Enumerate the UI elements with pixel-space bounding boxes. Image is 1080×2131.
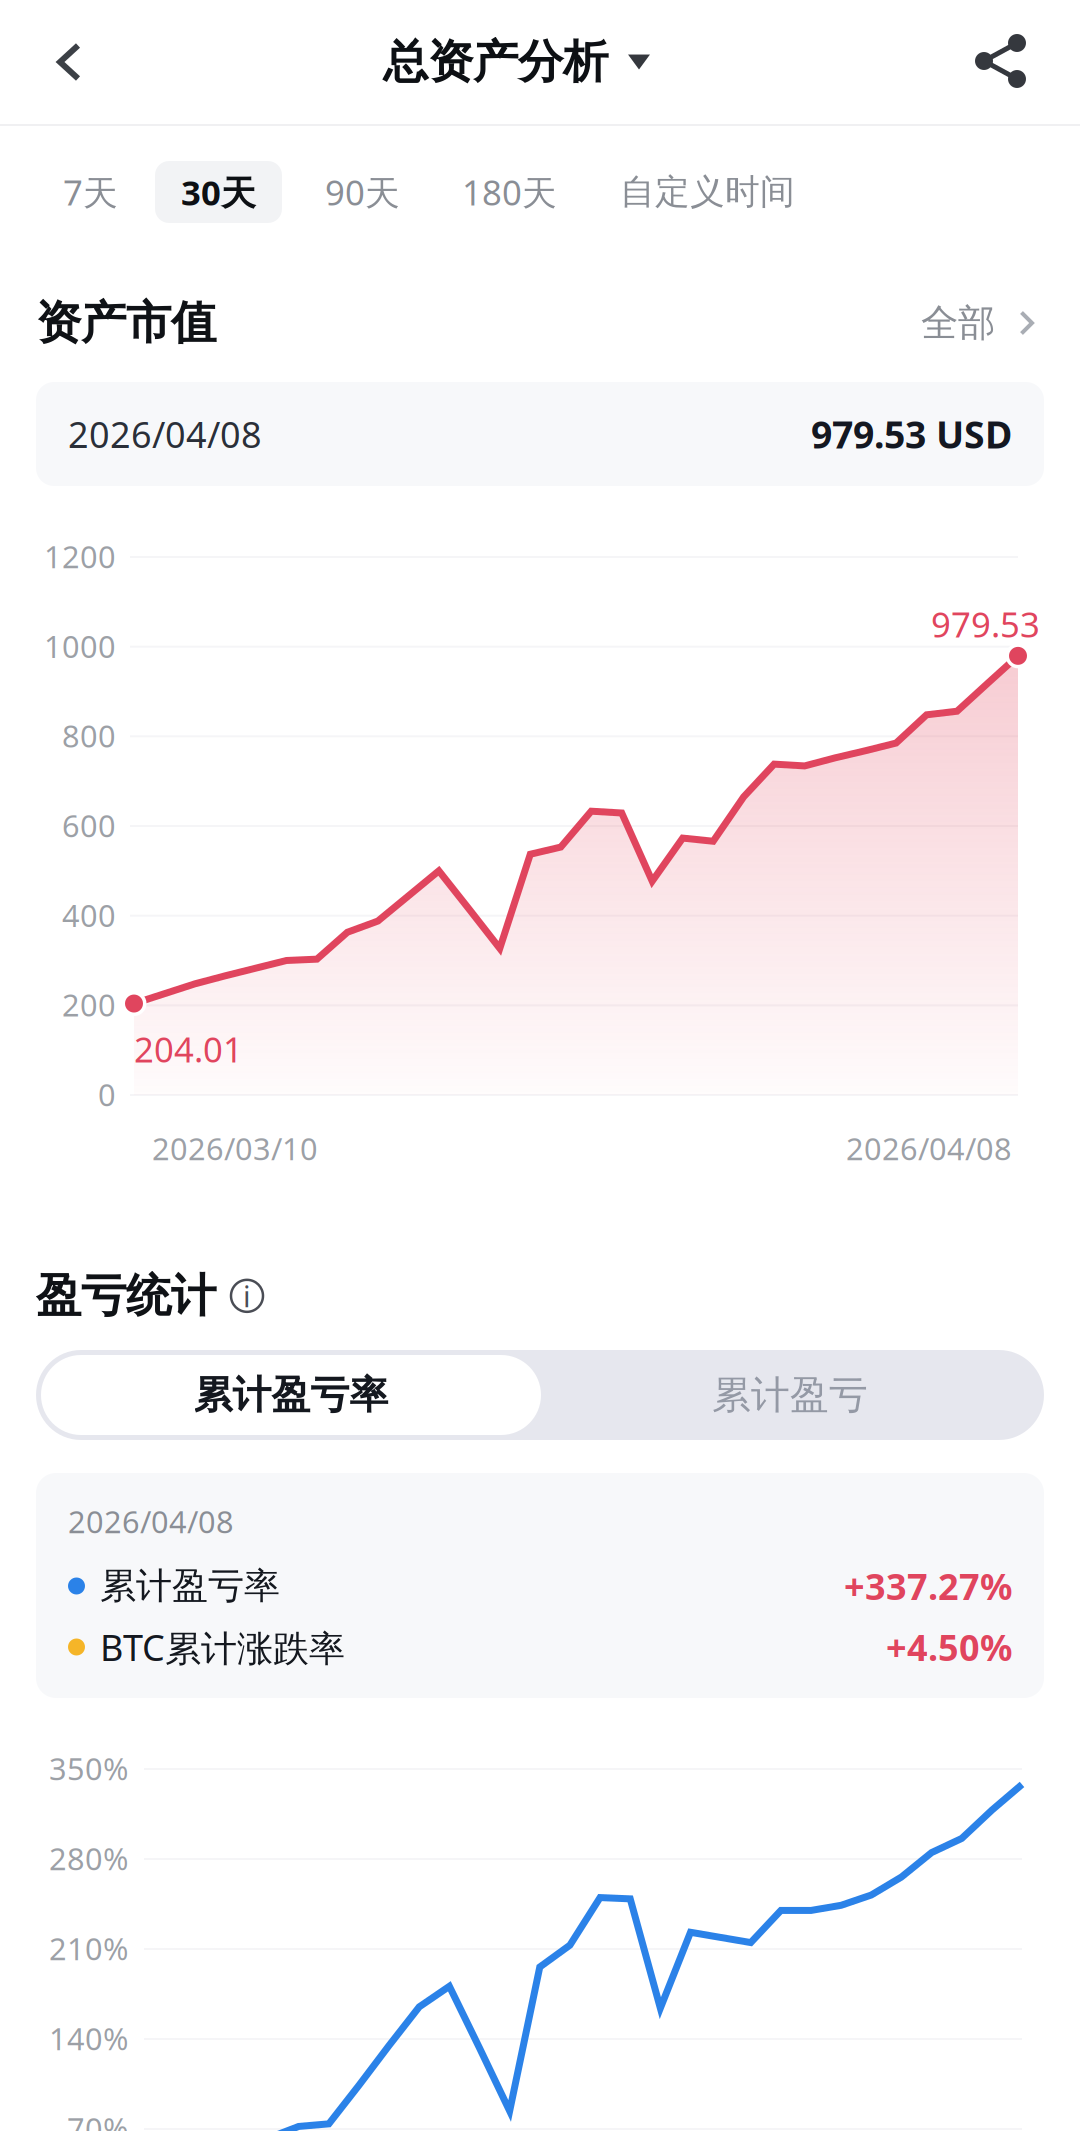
staticText: 累计盈亏率 bbox=[193, 1371, 388, 1419]
button[interactable]: 自定义时间 bbox=[594, 161, 821, 223]
staticText: 180天 bbox=[462, 169, 557, 215]
staticText: 400 bbox=[62, 895, 116, 935]
button[interactable]: Back bbox=[0, 0, 138, 124]
staticText: 70% bbox=[67, 2108, 128, 2131]
staticText: 全部 bbox=[921, 300, 995, 346]
staticText: 979.53 USD bbox=[811, 409, 1012, 459]
staticText: 140% bbox=[49, 2018, 128, 2059]
button[interactable]: 全部 bbox=[921, 300, 1035, 346]
staticText: 2026/04/08 bbox=[846, 1128, 1012, 1169]
button[interactable]: 累计盈亏 bbox=[541, 1355, 1039, 1435]
staticText: 累计盈亏 bbox=[712, 1371, 868, 1419]
staticText: 30天 bbox=[181, 169, 256, 215]
button[interactable]: 7天 bbox=[37, 161, 144, 223]
staticText: +337.27% bbox=[844, 1562, 1012, 1610]
button[interactable]: 总资产分析 bbox=[371, 0, 662, 124]
staticText: BTC累计涨跌率 bbox=[100, 1623, 345, 1671]
staticText: 2026/03/10 bbox=[152, 1128, 318, 1169]
staticText: 2026/04/08 bbox=[68, 1501, 234, 1542]
staticText: 7天 bbox=[63, 169, 118, 215]
staticText: 1200 bbox=[44, 536, 116, 577]
button[interactable]: 180天 bbox=[436, 161, 583, 223]
staticText: 0 bbox=[98, 1074, 116, 1115]
staticText: 210% bbox=[49, 1928, 128, 1969]
button[interactable]: Share bbox=[941, 0, 1059, 124]
staticText: +4.50% bbox=[886, 1623, 1012, 1671]
staticText: 1000 bbox=[44, 626, 116, 666]
staticText: 204.01 bbox=[134, 1026, 243, 1072]
staticText: 资产市值 bbox=[36, 295, 216, 351]
staticText: 盈亏统计 bbox=[36, 1268, 216, 1324]
staticText: 自定义时间 bbox=[620, 171, 795, 213]
staticText: 总资产分析 bbox=[383, 34, 608, 90]
button[interactable]: 30天 bbox=[155, 161, 282, 223]
staticText: i bbox=[243, 1276, 251, 1315]
staticText: 200 bbox=[62, 984, 116, 1025]
staticText: 累计盈亏率 bbox=[100, 1564, 280, 1608]
staticText: 90天 bbox=[325, 169, 400, 215]
staticText: 2026/04/08 bbox=[68, 410, 262, 458]
staticText: 800 bbox=[62, 715, 116, 756]
staticText: 600 bbox=[62, 805, 116, 846]
staticText: 350% bbox=[49, 1748, 128, 1789]
button[interactable]: 90天 bbox=[299, 161, 426, 223]
button[interactable]: 累计盈亏率 bbox=[41, 1355, 541, 1435]
staticText: 979.53 bbox=[931, 601, 1040, 647]
staticText: 280% bbox=[49, 1838, 128, 1879]
